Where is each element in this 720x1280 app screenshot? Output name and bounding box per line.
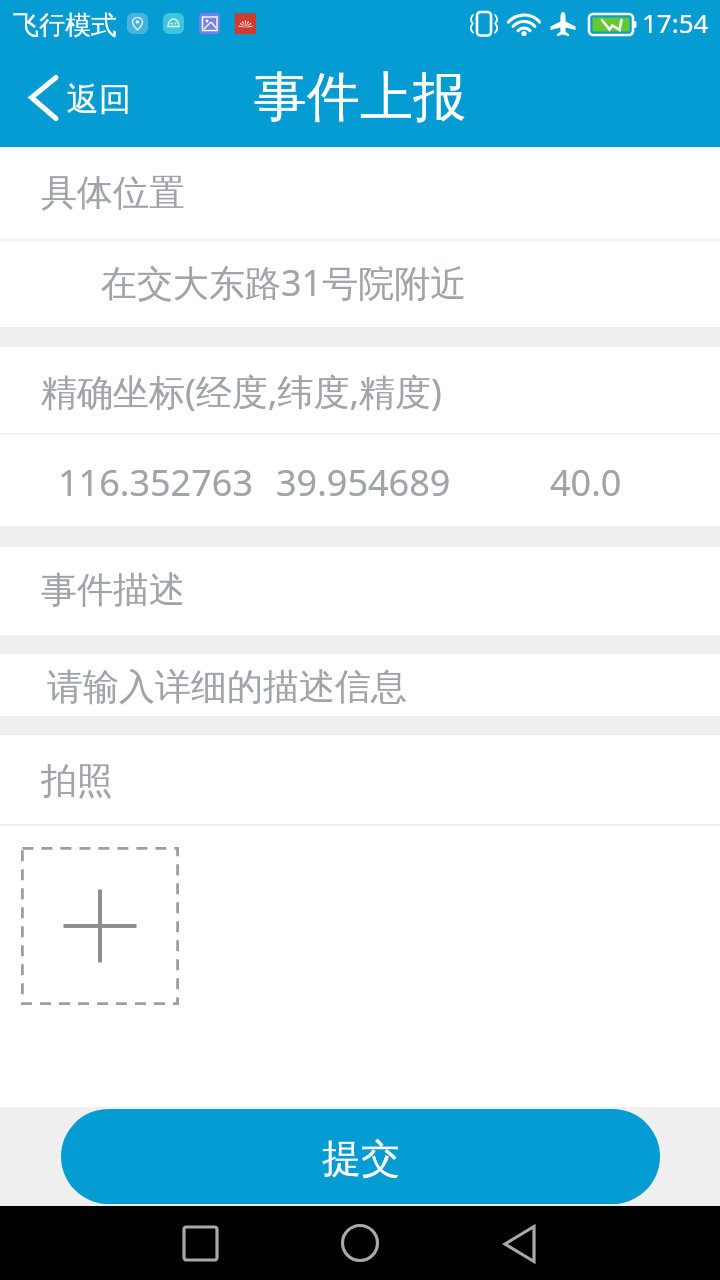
- button[interactable]: 请输入详细的描述信息: [0, 654, 720, 716]
- button[interactable]: Back: [0, 48, 160, 147]
- button[interactable]: Add photo: [21, 847, 179, 1005]
- staticText: 提交: [322, 1134, 400, 1183]
- button[interactable]: 116.352763: [0, 435, 240, 526]
- staticText: 事件描述: [41, 567, 185, 612]
- staticText: 返回: [67, 79, 131, 119]
- button[interactable]: Home: [300, 1206, 420, 1280]
- staticText: 具体位置: [41, 170, 185, 215]
- button[interactable]: 提交: [61, 1109, 660, 1204]
- button[interactable]: Back: [460, 1206, 580, 1280]
- staticText: 17:54: [642, 5, 709, 40]
- staticText: 116.352763: [58, 458, 253, 507]
- button[interactable]: 40.0: [480, 435, 720, 526]
- staticText: 事件上报: [254, 64, 466, 131]
- button[interactable]: 在交大东路31号院附近: [0, 241, 720, 327]
- staticText: 39.954689: [276, 458, 451, 507]
- staticText: 精确坐标(经度,纬度,精度): [41, 367, 442, 416]
- button[interactable]: Recent apps: [140, 1206, 260, 1280]
- staticText: 飞行模式: [13, 9, 117, 42]
- staticText: 拍照: [41, 758, 113, 803]
- button[interactable]: 39.954689: [240, 435, 480, 526]
- staticText: 在交大东路31号院附近: [101, 258, 467, 307]
- staticText: 请输入详细的描述信息: [47, 664, 407, 709]
- other: Back: [29, 76, 59, 120]
- staticText: 40.0: [550, 458, 622, 507]
